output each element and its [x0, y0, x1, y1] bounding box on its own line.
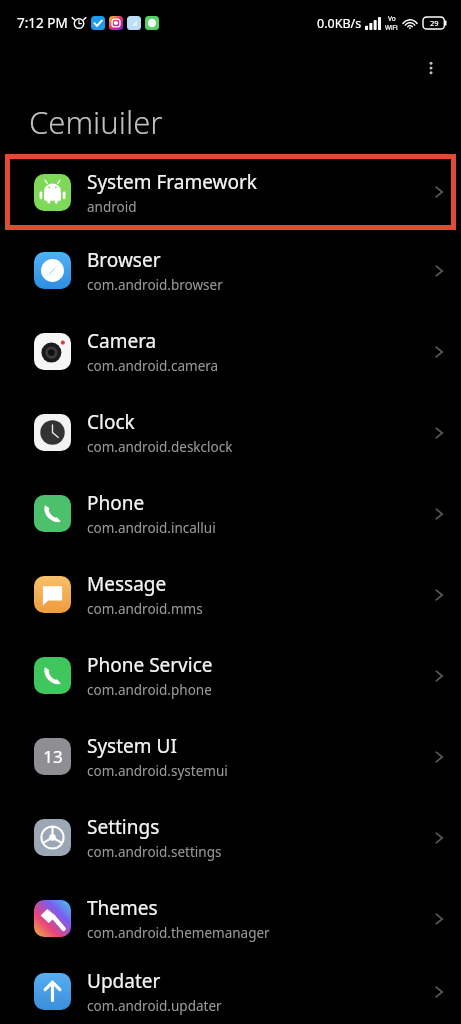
staticText: System UI	[87, 733, 177, 759]
staticText: Vo	[388, 14, 396, 23]
staticText: Themes	[87, 895, 158, 921]
staticText: com.android.thememanager	[87, 924, 270, 942]
button[interactable]: Themes	[0, 878, 461, 959]
staticText: Settings	[87, 814, 160, 840]
button[interactable]: 13	[0, 716, 461, 797]
staticText: 29	[430, 18, 439, 28]
button[interactable]: Clock	[0, 392, 461, 473]
staticText: com.android.updater	[87, 997, 222, 1015]
staticText: Phone	[87, 490, 145, 516]
button[interactable]: Camera	[0, 311, 461, 392]
button[interactable]: Phone	[0, 473, 461, 554]
staticText: Clock	[87, 409, 135, 435]
staticText: com.android.camera	[87, 357, 219, 375]
staticText: 13	[43, 745, 63, 768]
button[interactable]: System Framework	[5, 154, 456, 230]
staticText: Browser	[87, 247, 161, 273]
staticText: Camera	[87, 328, 157, 354]
button[interactable]: Message	[0, 554, 461, 635]
staticText: Updater	[87, 968, 161, 994]
staticText: com.android.systemui	[87, 762, 228, 780]
staticText: 7:12 PM	[17, 14, 68, 32]
staticText: WiFi	[385, 23, 398, 32]
staticText: android	[87, 198, 137, 216]
staticText: System Framework	[87, 169, 258, 195]
button[interactable]: Browser	[0, 230, 461, 311]
button[interactable]: More options	[409, 46, 453, 90]
staticText: Phone Service	[87, 652, 213, 678]
staticText: com.android.mms	[87, 600, 203, 618]
staticText: 0.0KB/s	[317, 15, 362, 32]
staticText: Cemiuiler	[29, 101, 163, 143]
staticText: Message	[87, 571, 167, 597]
button[interactable]: Phone Service	[0, 635, 461, 716]
staticText: com.android.incallui	[87, 519, 216, 537]
staticText: com.android.phone	[87, 681, 212, 699]
staticText: com.android.settings	[87, 843, 222, 861]
button[interactable]: Settings	[0, 797, 461, 878]
staticText: com.android.deskclock	[87, 438, 233, 456]
button[interactable]: Updater	[0, 959, 461, 1024]
staticText: com.android.browser	[87, 276, 223, 294]
